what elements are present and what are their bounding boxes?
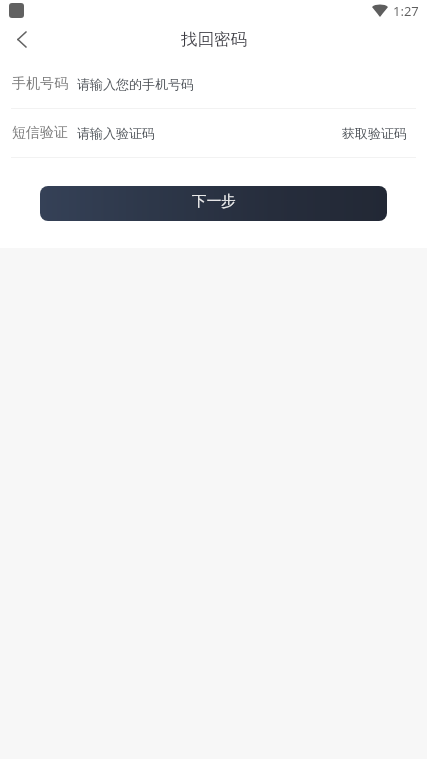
staticText: 请输入您的手机号码: [77, 76, 194, 92]
button[interactable]: 短信验证: [0, 109, 427, 157]
button[interactable]: Back: [0, 21, 42, 58]
staticText: 找回密码: [181, 29, 247, 50]
staticText: 短信验证: [12, 124, 68, 142]
staticText: 下一步: [192, 192, 236, 210]
button[interactable]: 获取验证码: [334, 118, 407, 148]
staticText: 1:27: [393, 2, 419, 20]
staticText: 手机号码: [12, 75, 68, 93]
staticText: 请输入验证码: [77, 125, 155, 141]
button[interactable]: 下一步: [40, 186, 387, 221]
staticText: 获取验证码: [342, 125, 407, 141]
button[interactable]: 手机号码: [0, 60, 427, 108]
